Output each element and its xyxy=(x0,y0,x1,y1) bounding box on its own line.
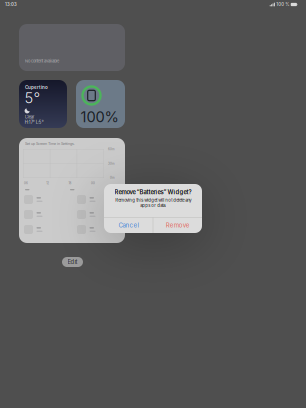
staticText: 00 xyxy=(91,181,95,185)
staticText: No content available xyxy=(25,58,59,63)
staticText: 60m xyxy=(108,147,115,151)
staticText: 12 xyxy=(46,181,49,185)
button[interactable]: Remove xyxy=(153,217,202,233)
staticText: 5° xyxy=(24,89,40,107)
staticText: 13:03 xyxy=(5,2,17,7)
staticText: 18 xyxy=(69,181,72,185)
staticText: Remove “Batteries” Widget? xyxy=(114,188,191,196)
staticText: Cupertino xyxy=(25,84,48,90)
staticText: Cancel xyxy=(118,221,138,229)
staticText: 100% xyxy=(80,108,118,126)
staticText: Clear xyxy=(25,114,35,119)
staticText: H:17° L:5° xyxy=(25,120,44,125)
button[interactable]: Edit xyxy=(62,257,83,267)
button[interactable]: Set up Screen Time in Settings. xyxy=(19,138,125,243)
staticText: 06 xyxy=(24,181,28,185)
button[interactable]: No content available xyxy=(19,24,125,71)
staticText: Set up Screen Time in Settings. xyxy=(25,141,75,146)
staticText: Edit xyxy=(67,258,77,265)
staticText: 100 % xyxy=(276,2,289,7)
button[interactable]: Cupertino xyxy=(19,80,67,128)
staticText: 0m xyxy=(110,176,115,179)
button[interactable]: 100% xyxy=(76,80,125,128)
staticText: Removing this widget will not delete any… xyxy=(115,198,191,208)
button[interactable]: Cancel xyxy=(104,217,153,233)
staticText: 30m xyxy=(108,162,115,165)
staticText: Remove xyxy=(166,221,190,229)
